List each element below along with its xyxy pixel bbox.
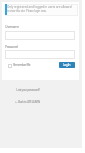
button[interactable]: Lost your password?: [16, 88, 40, 92]
button[interactable]: [8, 64, 12, 68]
button[interactable]: [5, 31, 75, 40]
button[interactable]: [5, 50, 75, 59]
staticText: Only registered and logged in users are …: [7, 5, 72, 9]
staticText: Username: [5, 24, 19, 29]
button[interactable]: ← Back to LIFE LEARN: [15, 100, 40, 104]
staticText: Log In: [63, 63, 71, 67]
button[interactable]: Remember Me: [13, 63, 31, 67]
staticText: Password: [5, 44, 18, 49]
button[interactable]: Log In: [59, 62, 75, 68]
staticText: to view this site. Please login now.: [7, 9, 47, 13]
